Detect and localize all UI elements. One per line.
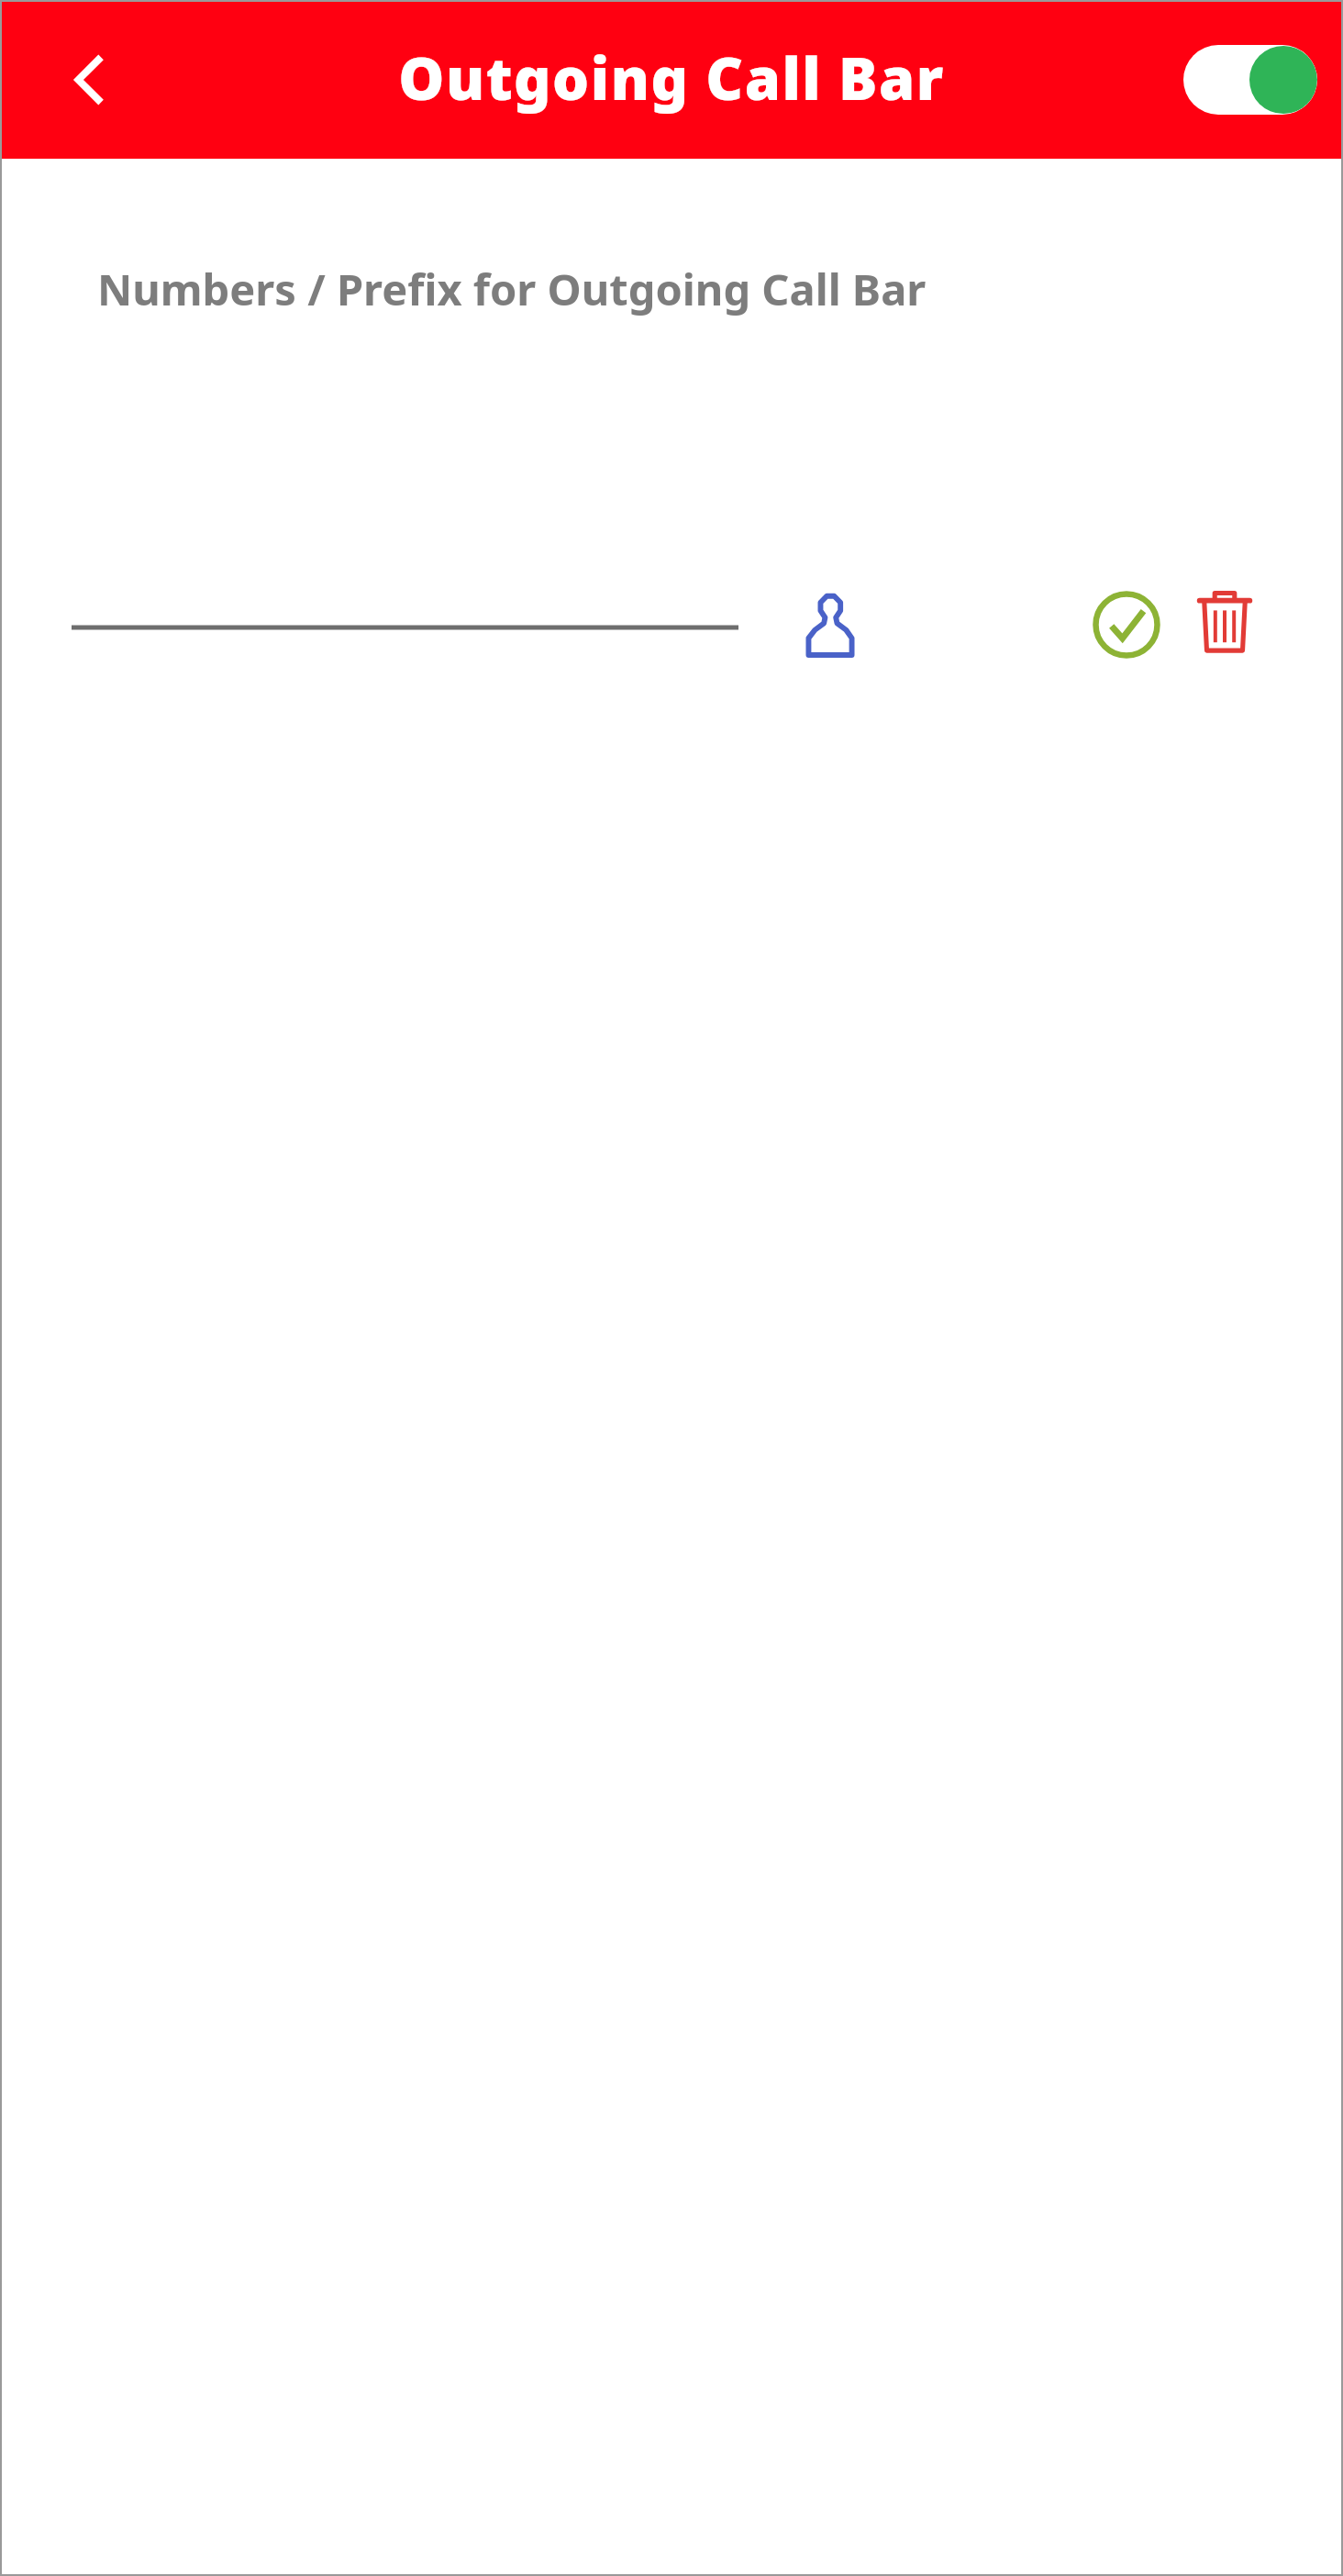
button[interactable]: Choose contact: [778, 573, 882, 678]
staticText: Numbers / Prefix for Outgoing Call Bar: [97, 260, 927, 318]
button[interactable]: Confirm: [1075, 573, 1178, 676]
staticText: Outgoing Call Bar: [398, 39, 945, 117]
button[interactable]: Delete: [1176, 573, 1273, 671]
button[interactable]: Back: [48, 36, 136, 124]
button[interactable]: Toggle Outgoing Call Bar: [1183, 45, 1317, 115]
button[interactable]: [72, 625, 738, 744]
